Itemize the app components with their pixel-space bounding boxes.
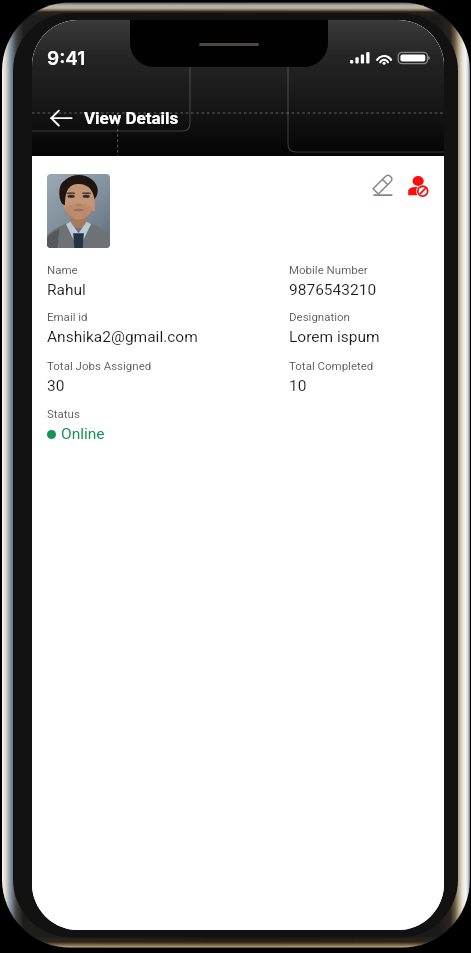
staticText: Total Completed <box>289 359 374 372</box>
staticText: View Details <box>84 108 179 128</box>
button[interactable]: Back <box>44 104 179 134</box>
button[interactable]: Block user <box>408 176 429 196</box>
staticText: 9876543210 <box>289 281 377 299</box>
staticText: 30 <box>47 377 65 395</box>
staticText: Designation <box>289 310 350 323</box>
staticText: 10 <box>289 377 307 395</box>
staticText: Rahul <box>47 281 86 299</box>
staticText: Lorem ispum <box>289 328 380 346</box>
staticText: Name <box>47 263 78 276</box>
staticText: Total Jobs Assigned <box>47 359 152 372</box>
staticText: 9:41 <box>47 47 86 70</box>
staticText: Anshika2@gmail.com <box>47 328 198 346</box>
staticText: Email id <box>47 310 88 323</box>
button[interactable]: Edit <box>374 176 392 196</box>
staticText: Mobile Number <box>289 263 368 276</box>
other: Back <box>44 104 78 134</box>
staticText: Status <box>47 407 80 420</box>
staticText: Online <box>61 425 105 443</box>
